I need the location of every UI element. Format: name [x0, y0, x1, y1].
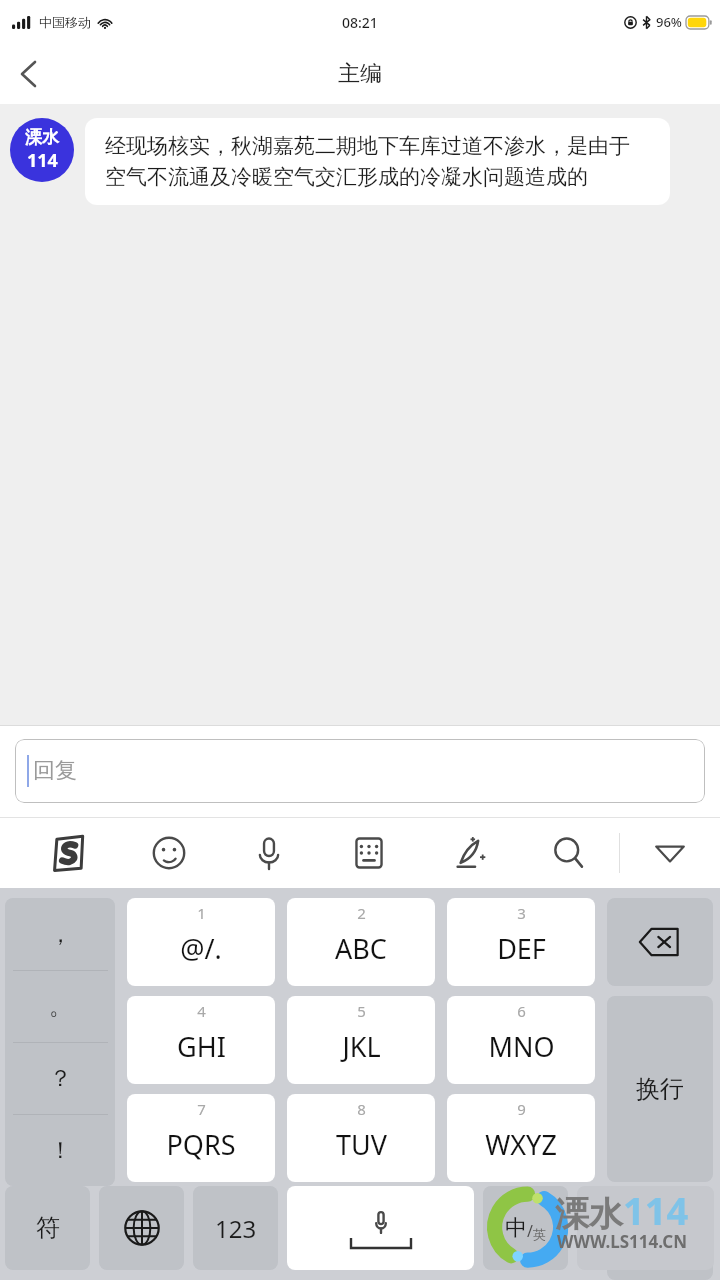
- staticText: JKL: [342, 1028, 381, 1065]
- staticText: 6: [517, 1001, 526, 1021]
- button[interactable]: 7: [127, 1094, 275, 1182]
- button[interactable]: 5: [287, 996, 435, 1084]
- button[interactable]: 0: [607, 1192, 713, 1280]
- button[interactable]: Backspace: [607, 898, 713, 986]
- staticText: ABC: [335, 930, 387, 967]
- button[interactable]: Send: [577, 1186, 714, 1270]
- button[interactable]: Sogou input: [18, 817, 119, 888]
- staticText: 溧水: [555, 1193, 623, 1236]
- staticText: MNO: [488, 1028, 555, 1065]
- button[interactable]: 符: [5, 1186, 90, 1270]
- button[interactable]: ！: [5, 1114, 115, 1186]
- staticText: GHI: [177, 1028, 226, 1065]
- button[interactable]: 。: [5, 970, 115, 1042]
- staticText: ！: [49, 1136, 72, 1165]
- staticText: 溧水: [25, 127, 59, 148]
- button[interactable]: 经现场核实，秋湖嘉苑二期地下车库过道不渗水，是由于空气不流通及冷暖空气交汇形成的…: [85, 118, 670, 205]
- staticText: 中国移动: [39, 14, 91, 30]
- button[interactable]: 回复: [15, 739, 705, 803]
- button[interactable]: 123: [193, 1186, 278, 1270]
- staticText: 1: [197, 903, 206, 923]
- staticText: DEF: [497, 930, 546, 967]
- button[interactable]: 中: [483, 1186, 568, 1270]
- staticText: /: [527, 1220, 533, 1242]
- button[interactable]: 3: [447, 898, 595, 986]
- staticText: 回复: [33, 757, 77, 785]
- button[interactable]: ？: [5, 1042, 115, 1114]
- button[interactable]: Voice input: [219, 817, 319, 888]
- staticText: WWW.LS114.CN: [557, 1230, 687, 1253]
- staticText: WXYZ: [485, 1126, 557, 1163]
- staticText: ？: [49, 1064, 72, 1093]
- staticText: 0: [653, 1219, 668, 1253]
- staticText: 4: [197, 1001, 206, 1021]
- staticText: 主编: [338, 60, 382, 88]
- button[interactable]: Hide keyboard: [620, 817, 720, 888]
- staticText: 。: [49, 992, 72, 1021]
- staticText: 114: [623, 1184, 689, 1236]
- button[interactable]: Space / voice: [287, 1186, 474, 1270]
- button[interactable]: Search: [519, 817, 619, 888]
- button[interactable]: 2: [287, 898, 435, 986]
- staticText: 114: [27, 148, 58, 173]
- staticText: 123: [215, 1212, 257, 1245]
- staticText: 中: [505, 1214, 527, 1242]
- staticText: 5: [357, 1001, 366, 1021]
- button[interactable]: 8: [287, 1094, 435, 1182]
- button[interactable]: Switch language: [99, 1186, 184, 1270]
- staticText: 8: [357, 1099, 366, 1119]
- staticText: 96%: [656, 13, 682, 31]
- staticText: 符: [36, 1213, 60, 1243]
- staticText: ，: [49, 920, 72, 949]
- button[interactable]: 4: [127, 996, 275, 1084]
- staticText: 08:21: [342, 13, 378, 32]
- button[interactable]: 溧水: [10, 118, 74, 182]
- button[interactable]: Handwriting: [419, 817, 519, 888]
- staticText: TUV: [336, 1126, 387, 1163]
- button[interactable]: Back: [0, 46, 56, 102]
- staticText: 英: [533, 1226, 546, 1242]
- staticText: 2: [357, 903, 366, 923]
- staticText: @/.: [180, 930, 222, 967]
- staticText: 经现场核实，秋湖嘉苑二期地下车库过道不渗水，是由于空气不流通及冷暖空气交汇形成的…: [105, 133, 650, 190]
- staticText: 3: [517, 903, 526, 923]
- staticText: 换行: [636, 1074, 684, 1104]
- staticText: 9: [517, 1099, 526, 1119]
- staticText: 7: [197, 1099, 206, 1119]
- button[interactable]: Keyboard layout: [319, 817, 419, 888]
- button[interactable]: 9: [447, 1094, 595, 1182]
- button[interactable]: 6: [447, 996, 595, 1084]
- button[interactable]: 换行: [607, 996, 713, 1182]
- button[interactable]: Emoji: [119, 817, 219, 888]
- button[interactable]: ，: [5, 898, 115, 970]
- staticText: PQRS: [166, 1126, 236, 1163]
- button[interactable]: 1: [127, 898, 275, 986]
